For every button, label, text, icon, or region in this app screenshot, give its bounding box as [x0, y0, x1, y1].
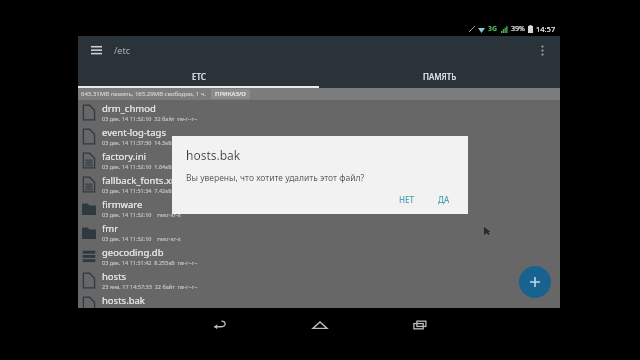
button[interactable]: event-log-tags — [78, 124, 560, 148]
button[interactable]: drm_chmod — [78, 100, 560, 124]
staticText: 643.31MB память, 165.29MB свободно, 1 ч. — [81, 90, 206, 98]
staticText: ETC — [192, 71, 206, 82]
staticText: /etc — [114, 44, 130, 56]
staticText: 03 дек. 14 11:37:50 14.3кБ rw-r--r-- — [102, 139, 195, 146]
staticText: hosts.bak — [186, 147, 241, 163]
button[interactable]: НЕТ — [391, 191, 422, 208]
staticText: event-log-tags — [102, 126, 166, 139]
button[interactable]: More options — [532, 40, 552, 60]
staticText: НЕТ — [399, 194, 414, 205]
button[interactable]: ПАМЯТЬ — [319, 64, 560, 88]
button[interactable]: hosts.bak — [78, 292, 560, 316]
button[interactable]: ETC — [78, 64, 319, 88]
button[interactable]: fmr — [78, 220, 560, 244]
staticText: drm_chmod — [102, 102, 156, 115]
button[interactable]: hosts — [78, 268, 560, 292]
staticText: ДА — [438, 194, 450, 205]
staticText: 03 дек. 14 11:52:10 rwxr-xr-x — [102, 235, 181, 242]
staticText: 14:57 — [536, 24, 556, 34]
button[interactable]: Home — [270, 308, 370, 342]
staticText: fallback_fonts.xml — [102, 174, 183, 187]
staticText: ПРИКАЗ/О — [215, 90, 246, 98]
button[interactable]: Back — [170, 308, 270, 342]
staticText: ПАМЯТЬ — [423, 71, 457, 82]
staticText: 23 янв. 17 14:57:33 22 байт rw-r--r-- — [102, 283, 198, 290]
staticText: 03 дек. 14 11:52:10 32 байт rw-r--r-- — [102, 115, 198, 122]
button[interactable]: firmware — [78, 196, 560, 220]
staticText: Вы уверены, что хотите удалить этот файл… — [186, 172, 365, 184]
button[interactable]: factory.ini — [78, 148, 560, 172]
staticText: hosts.bak — [102, 294, 145, 307]
staticText: fmr — [102, 222, 119, 235]
button[interactable]: geocoding.db — [78, 244, 560, 268]
staticText: 39% — [511, 24, 525, 34]
staticText: 03 дек. 14 11:51:34 7.42кБ rw-r--r-- — [102, 187, 195, 194]
staticText: 03 дек. 14 11:52:10 rwxr-xr-x — [102, 211, 181, 218]
staticText: 3G — [488, 24, 498, 34]
button[interactable]: Add — [519, 266, 551, 298]
staticText: 03 дек. 14 11:52:10 22 байт rw-r--r-- — [102, 307, 198, 314]
button[interactable]: ДА — [430, 191, 458, 208]
staticText: factory.ini — [102, 150, 147, 163]
staticText: geocoding.db — [102, 246, 164, 259]
staticText: hosts — [102, 270, 127, 283]
button[interactable]: fallback_fonts.xml — [78, 172, 560, 196]
staticText: 03 дек. 14 11:51:42 8.255кБ rw-r--r-- — [102, 259, 198, 266]
button[interactable]: Recent apps — [370, 308, 470, 342]
staticText: firmware — [102, 198, 143, 211]
button[interactable]: ПРИКАЗ/О — [215, 90, 246, 98]
button[interactable]: Menu — [86, 40, 106, 60]
staticText: 03 дек. 14 11:52:10 1.64кБ rw-r--r-- — [102, 163, 195, 170]
